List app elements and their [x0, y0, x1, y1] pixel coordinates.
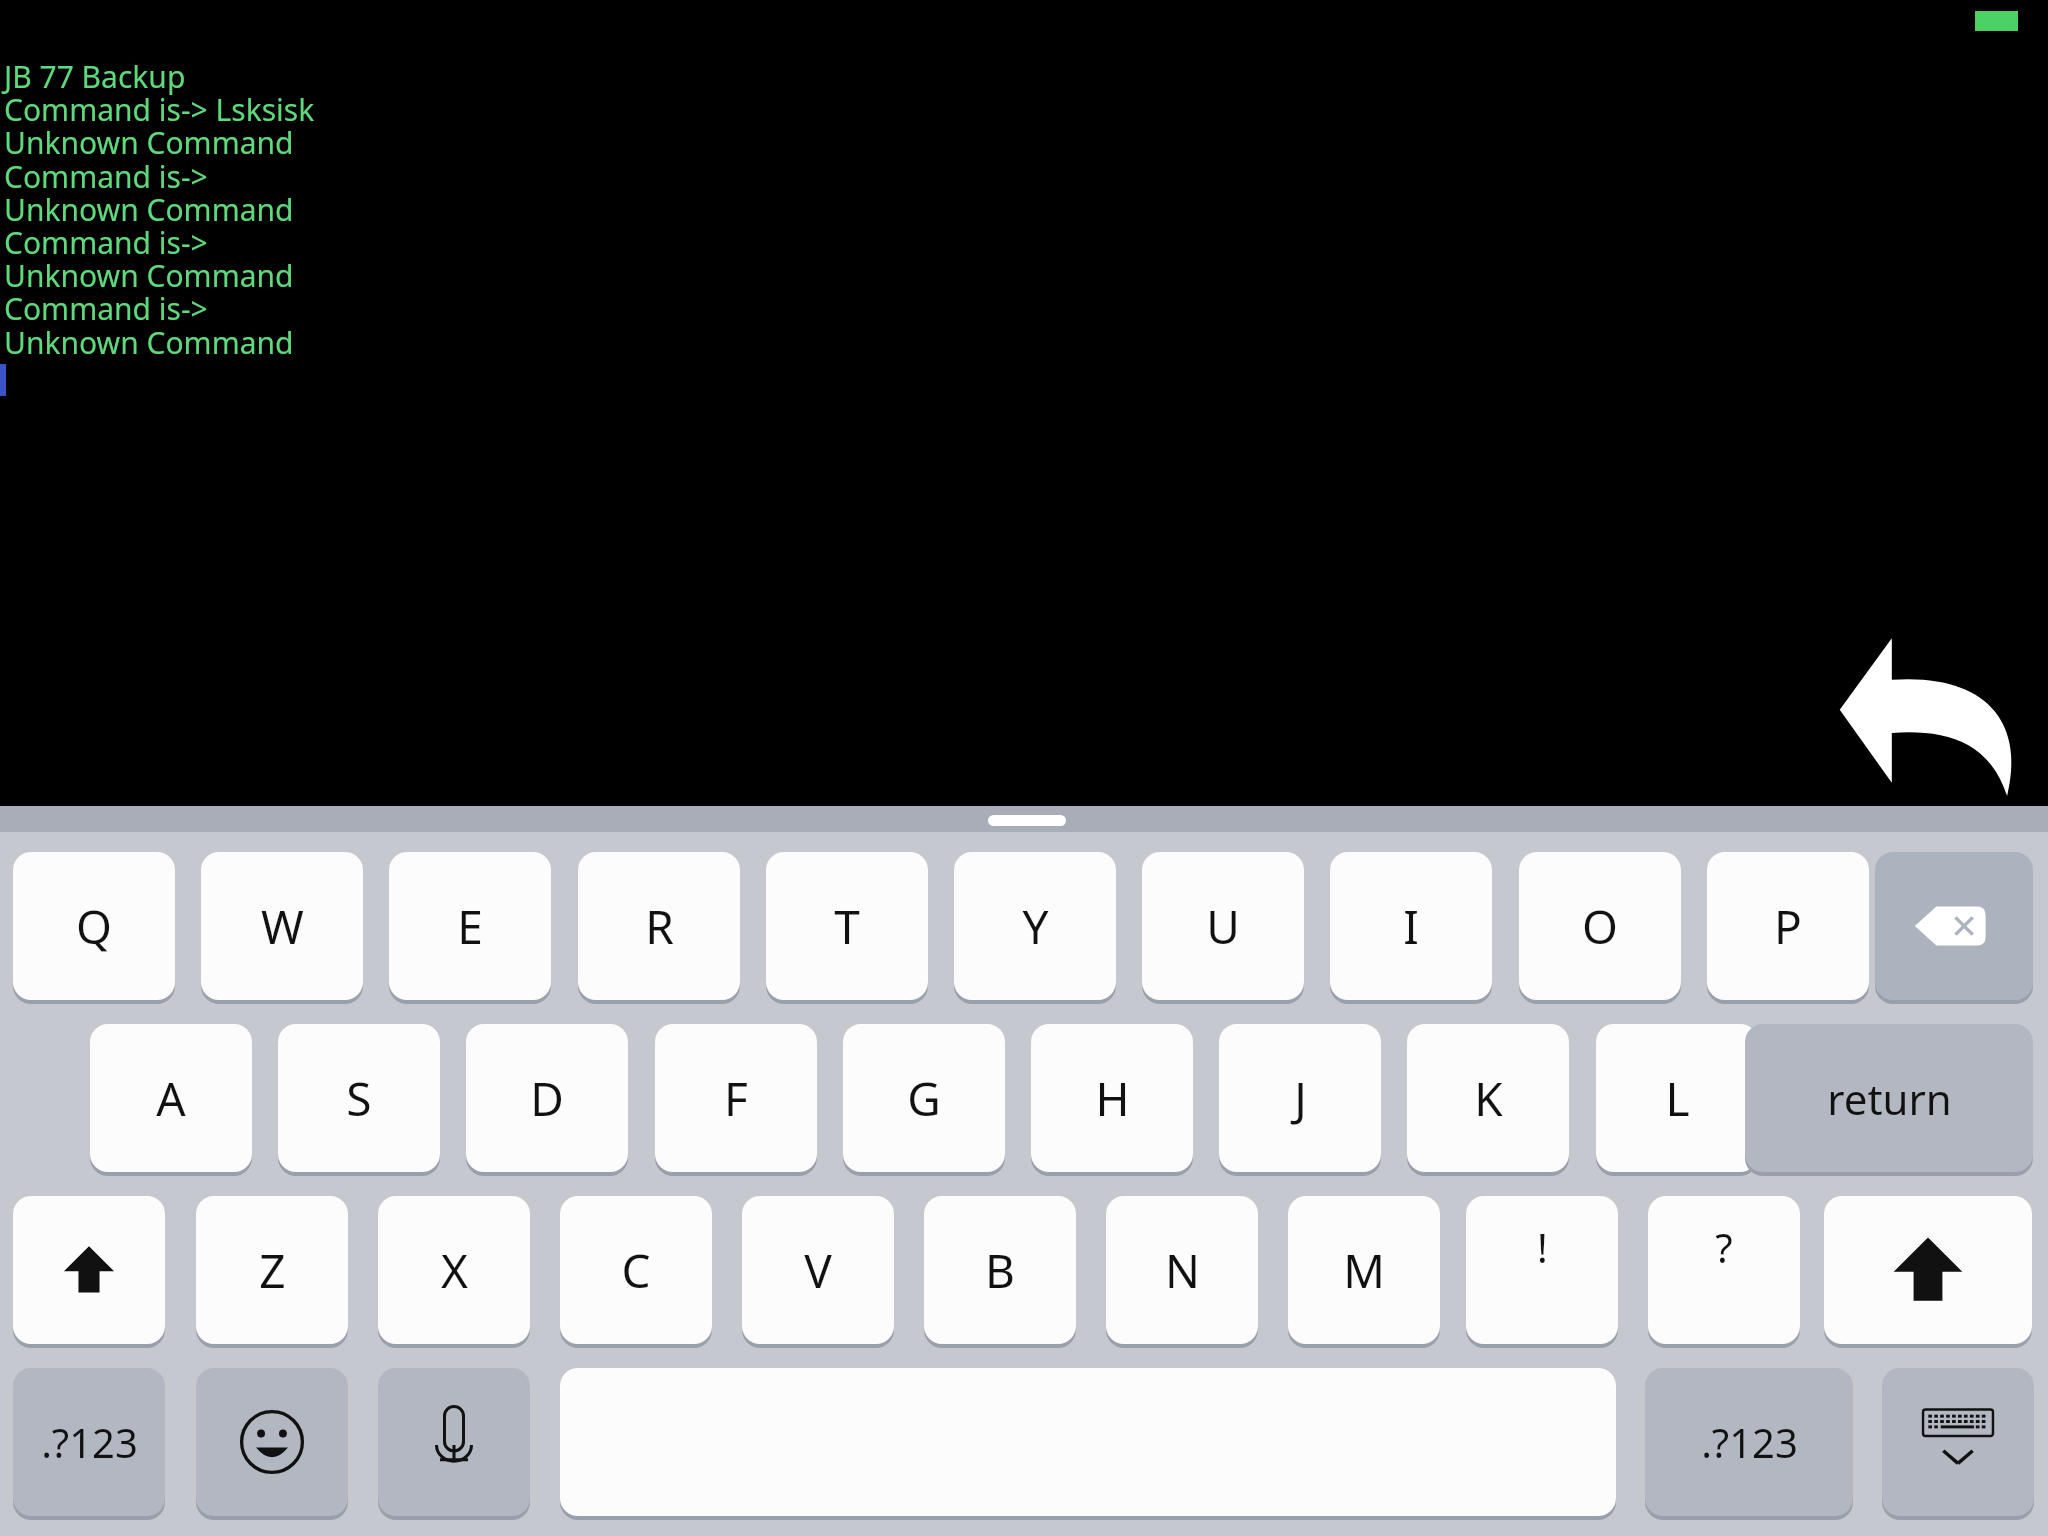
staticText: .?123 — [1701, 1415, 1798, 1469]
button[interactable]: D — [466, 1024, 628, 1172]
button[interactable]: I — [1330, 852, 1492, 1000]
button[interactable]: Q — [13, 852, 175, 1000]
staticText: U — [1206, 895, 1240, 958]
button[interactable]: G — [843, 1024, 1005, 1172]
staticText: Command is-> — [4, 222, 208, 263]
staticText: C — [621, 1239, 651, 1302]
staticText: Command is-> Lsksisk — [4, 89, 315, 130]
staticText: P — [1774, 895, 1802, 958]
staticText: .?123 — [41, 1415, 138, 1469]
button[interactable]: W — [201, 852, 363, 1000]
staticText: Command is-> — [4, 156, 208, 197]
button[interactable]: L — [1596, 1024, 1758, 1172]
button[interactable]: B — [924, 1196, 1076, 1344]
button[interactable]: Backspace — [1875, 852, 2033, 1000]
button[interactable]: X — [378, 1196, 530, 1344]
staticText: M — [1343, 1239, 1385, 1302]
button[interactable]: K — [1407, 1024, 1569, 1172]
staticText: Z — [259, 1239, 286, 1302]
button[interactable]: R — [578, 852, 740, 1000]
staticText: O — [1582, 895, 1618, 958]
button[interactable]: O — [1519, 852, 1681, 1000]
staticText: L — [1665, 1067, 1690, 1130]
staticText: ! — [1537, 1220, 1548, 1274]
button[interactable]: Shift — [13, 1196, 165, 1344]
staticText: ? — [1715, 1220, 1733, 1274]
staticText: Unknown Command — [4, 255, 294, 296]
button[interactable]: V — [742, 1196, 894, 1344]
staticText: Unknown Command — [4, 322, 294, 363]
staticText: JB 77 Backup — [4, 56, 186, 97]
staticText: R — [645, 895, 674, 958]
button[interactable]: J — [1219, 1024, 1381, 1172]
button[interactable]: Back — [1836, 630, 2022, 796]
button[interactable]: A — [90, 1024, 252, 1172]
button[interactable]: .?123 — [1645, 1368, 1853, 1516]
button[interactable]: return — [1745, 1024, 2033, 1172]
button[interactable]: Emoji — [196, 1368, 348, 1516]
staticText: Unknown Command — [4, 122, 294, 163]
staticText: E — [457, 895, 483, 958]
button[interactable]: .?123 — [13, 1368, 165, 1516]
staticText: W — [261, 895, 304, 958]
staticText: Y — [1022, 895, 1049, 958]
button[interactable]: Dictation — [378, 1368, 530, 1516]
button[interactable]: H — [1031, 1024, 1193, 1172]
button[interactable]: Z — [196, 1196, 348, 1344]
staticText: X — [441, 1239, 468, 1302]
button[interactable]: S — [278, 1024, 440, 1172]
staticText: G — [907, 1067, 941, 1130]
staticText: I — [1403, 895, 1419, 958]
staticText: S — [346, 1067, 372, 1130]
button[interactable]: ! — [1466, 1196, 1618, 1344]
staticText: N — [1165, 1239, 1200, 1302]
staticText: Q — [76, 895, 112, 958]
button[interactable]: P — [1707, 852, 1869, 1000]
button[interactable]: F — [655, 1024, 817, 1172]
staticText: T — [834, 895, 860, 958]
staticText: H — [1095, 1067, 1130, 1130]
staticText: K — [1474, 1067, 1503, 1130]
staticText: return — [1827, 1070, 1952, 1127]
staticText: D — [530, 1067, 564, 1130]
button[interactable]: C — [560, 1196, 712, 1344]
staticText: Unknown Command — [4, 189, 294, 230]
button[interactable]: N — [1106, 1196, 1258, 1344]
button[interactable]: M — [1288, 1196, 1440, 1344]
staticText: V — [804, 1239, 832, 1302]
button[interactable]: Shift — [1824, 1196, 2032, 1344]
staticText: B — [985, 1239, 1015, 1302]
staticText: F — [724, 1067, 748, 1130]
staticText: Command is-> — [4, 288, 208, 329]
button[interactable]: Y — [954, 852, 1116, 1000]
staticText: A — [156, 1067, 186, 1130]
button[interactable]: T — [766, 852, 928, 1000]
button[interactable] — [988, 815, 1066, 826]
button[interactable]: Hide keyboard — [1882, 1368, 2034, 1516]
button[interactable]: ? — [1648, 1196, 1800, 1344]
button[interactable]: U — [1142, 852, 1304, 1000]
staticText: J — [1294, 1067, 1307, 1130]
button[interactable]: E — [389, 852, 551, 1000]
